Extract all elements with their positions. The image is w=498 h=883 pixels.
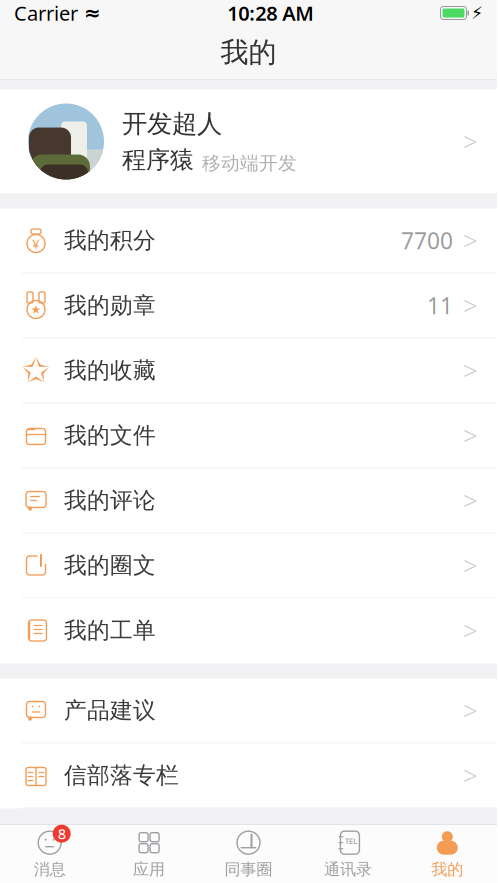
button[interactable]: ℡	[298, 828, 398, 880]
button[interactable]: 开发超人	[0, 89, 497, 193]
staticText: 消息	[34, 860, 66, 879]
button[interactable]: 信部落专栏	[0, 743, 497, 808]
staticText: >	[463, 289, 477, 322]
staticText: >	[463, 419, 477, 452]
button[interactable]: 8	[0, 828, 99, 880]
staticText: ¥	[32, 235, 40, 252]
staticText: 我的	[431, 860, 463, 879]
button[interactable]: 应用	[99, 828, 199, 880]
staticText: >	[463, 614, 477, 647]
staticText: 信部落专栏	[64, 762, 179, 789]
staticText: 我的收藏	[64, 357, 156, 384]
staticText: >	[463, 484, 477, 517]
staticText: >	[463, 759, 477, 792]
staticText: ★	[30, 303, 41, 316]
staticText: ✩	[22, 352, 50, 389]
staticText: >	[463, 549, 477, 582]
staticText: 程序猿	[122, 145, 194, 175]
staticText: >	[463, 224, 477, 257]
button[interactable]: ¥	[0, 208, 497, 273]
staticText: >	[463, 125, 477, 158]
staticText: 应用	[133, 860, 165, 879]
staticText: 移动端开发	[202, 152, 297, 175]
staticText: 开发超人	[122, 108, 222, 139]
button[interactable]: 同事圈	[199, 828, 298, 880]
staticText: 我的圈文	[64, 552, 156, 579]
staticText: 我的积分	[64, 227, 156, 254]
staticText: 10:28 AM	[227, 0, 314, 26]
staticText: 我的勋章	[64, 292, 156, 319]
staticText: Carrier	[14, 0, 78, 26]
staticText: 产品建议	[64, 697, 156, 724]
staticText: ⚡︎	[471, 3, 483, 23]
staticText: 11	[427, 290, 453, 320]
button[interactable]: 产品建议	[0, 678, 497, 743]
button[interactable]: 我的	[398, 828, 497, 880]
button[interactable]: 我的圈文	[0, 533, 497, 598]
button[interactable]: 我的文件	[0, 403, 497, 468]
staticText: ℡	[345, 834, 357, 853]
button[interactable]: ★	[0, 273, 497, 338]
button[interactable]: 我的工单	[0, 598, 497, 663]
staticText: 我的工单	[64, 617, 156, 644]
staticText: 我的评论	[64, 487, 156, 514]
staticText: 同事圈	[224, 860, 272, 879]
staticText: 8	[58, 824, 66, 843]
staticText: ≈	[84, 2, 101, 24]
button[interactable]: 我的评论	[0, 468, 497, 533]
staticText: 通讯录	[324, 860, 372, 879]
staticText: 我的	[220, 35, 276, 70]
staticText: >	[463, 354, 477, 387]
staticText: 我的文件	[64, 422, 156, 449]
staticText: >	[463, 694, 477, 727]
staticText: 7700	[401, 225, 453, 255]
button[interactable]: ✩	[0, 338, 497, 403]
